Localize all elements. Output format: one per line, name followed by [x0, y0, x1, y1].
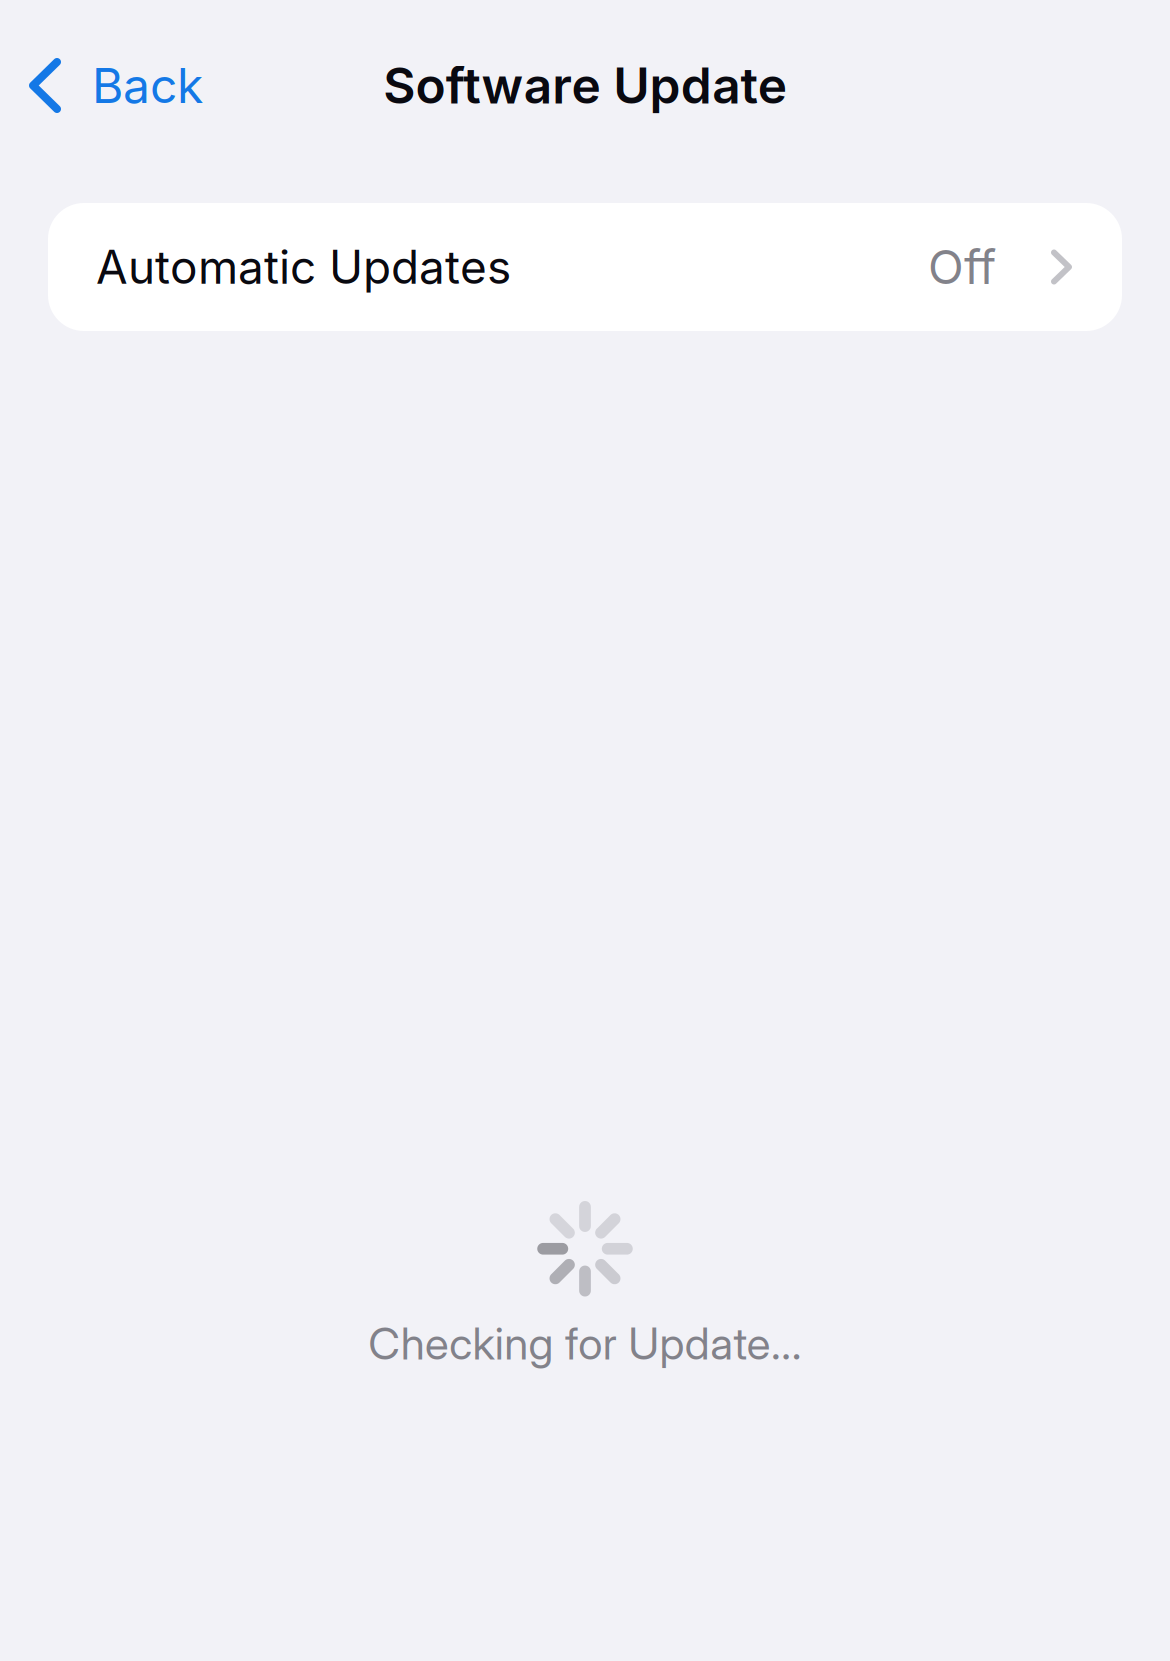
staticText: Back	[92, 56, 203, 115]
staticText: Off	[928, 239, 996, 295]
staticText: Checking for Update...	[368, 1317, 802, 1370]
button[interactable]: Back	[0, 38, 227, 133]
button[interactable]: Automatic Updates	[48, 203, 1122, 331]
staticText: Software Update	[383, 55, 787, 115]
staticText: Automatic Updates	[96, 239, 511, 295]
